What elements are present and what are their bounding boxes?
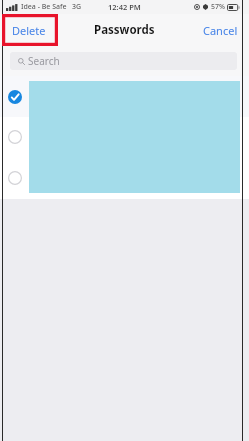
staticText: Passwords bbox=[94, 22, 155, 38]
staticText: 57% bbox=[211, 2, 225, 12]
staticText: Cancel bbox=[203, 23, 238, 38]
staticText: Search bbox=[28, 54, 60, 68]
button[interactable]: Selected password entry bbox=[0, 76, 249, 117]
button[interactable]: Search bbox=[10, 52, 237, 70]
button[interactable]: Password entry bbox=[0, 117, 249, 156]
staticText: Idea - Be Safe bbox=[21, 2, 67, 12]
button[interactable]: Cancel bbox=[192, 16, 249, 45]
staticText: 3G bbox=[72, 2, 82, 12]
button[interactable]: Delete bbox=[0, 16, 58, 45]
staticText: Delete bbox=[12, 23, 46, 38]
staticText: 12:42 PM bbox=[108, 2, 141, 12]
button[interactable]: Password entry bbox=[0, 156, 249, 199]
